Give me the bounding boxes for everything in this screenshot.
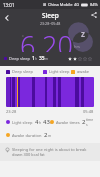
staticText: awake xyxy=(77,69,90,74)
staticText: 23:28 xyxy=(6,109,17,114)
staticText: 4 xyxy=(35,118,39,126)
staticText: h xyxy=(39,120,42,125)
staticText: m xyxy=(45,56,49,61)
staticText: 1 xyxy=(32,55,35,62)
staticText: 2 xyxy=(82,118,86,126)
staticText: China Mobile xyxy=(48,2,73,7)
staticText: 43 xyxy=(43,118,50,126)
staticText: 13:01 xyxy=(3,2,15,8)
staticText: Sleeping for one night is about to break… xyxy=(12,147,95,157)
staticText: hrs xyxy=(74,44,81,49)
staticText: Sleep xyxy=(42,11,59,20)
staticText: 2 xyxy=(44,131,48,139)
staticText: ° xyxy=(22,34,24,39)
staticText: 05:48 xyxy=(83,109,94,114)
staticText: Light sleep xyxy=(49,69,70,74)
staticText: 23:28~05:48 xyxy=(40,21,61,26)
staticText: ⊞ xyxy=(43,2,47,7)
staticText: 35 xyxy=(39,55,45,62)
staticText: z xyxy=(81,28,85,39)
staticText: times xyxy=(86,117,94,127)
staticText: 84% xyxy=(90,2,98,7)
staticText: Deep sleep xyxy=(12,69,33,74)
staticText: m xyxy=(48,133,50,138)
staticText: Awake duration xyxy=(12,133,42,138)
button[interactable]: Back xyxy=(0,11,14,25)
button[interactable]: Sleeping for one night is about to break… xyxy=(0,143,100,161)
staticText: 6.20 xyxy=(20,27,73,52)
staticText: Deep sleep xyxy=(9,56,30,61)
button[interactable]: Share xyxy=(89,10,98,19)
staticText: Awake times xyxy=(56,120,80,125)
staticText: 4G xyxy=(74,2,80,7)
staticText: Light sleep xyxy=(12,120,33,125)
staticText: h xyxy=(35,56,38,61)
